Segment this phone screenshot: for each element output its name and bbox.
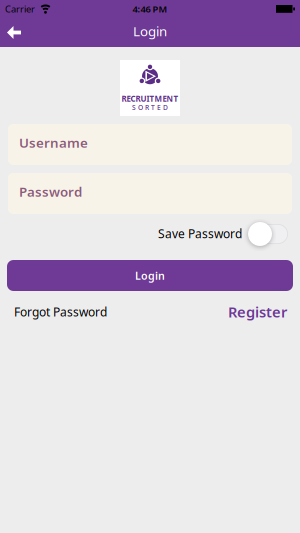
button[interactable]: Forgot Password — [14, 304, 107, 320]
button[interactable]: Back — [0, 22, 21, 45]
button[interactable]: Password — [8, 173, 292, 214]
staticText: Username — [19, 134, 88, 151]
button[interactable]: Username — [8, 124, 292, 165]
button[interactable]: Login — [7, 260, 293, 291]
staticText: 4:46 PM — [132, 3, 167, 15]
staticText: Carrier — [5, 3, 35, 15]
staticText: Register — [228, 302, 287, 321]
staticText: Forgot Password — [14, 304, 107, 320]
button[interactable]: Save Password — [248, 222, 288, 246]
staticText: Login — [135, 268, 165, 283]
staticText: Login — [133, 22, 167, 40]
staticText: Save Password — [158, 225, 242, 241]
staticText: SORTED — [132, 103, 168, 112]
staticText: Password — [19, 183, 82, 200]
staticText: RECRUITMENT — [121, 93, 178, 104]
button[interactable]: Register — [228, 302, 287, 321]
